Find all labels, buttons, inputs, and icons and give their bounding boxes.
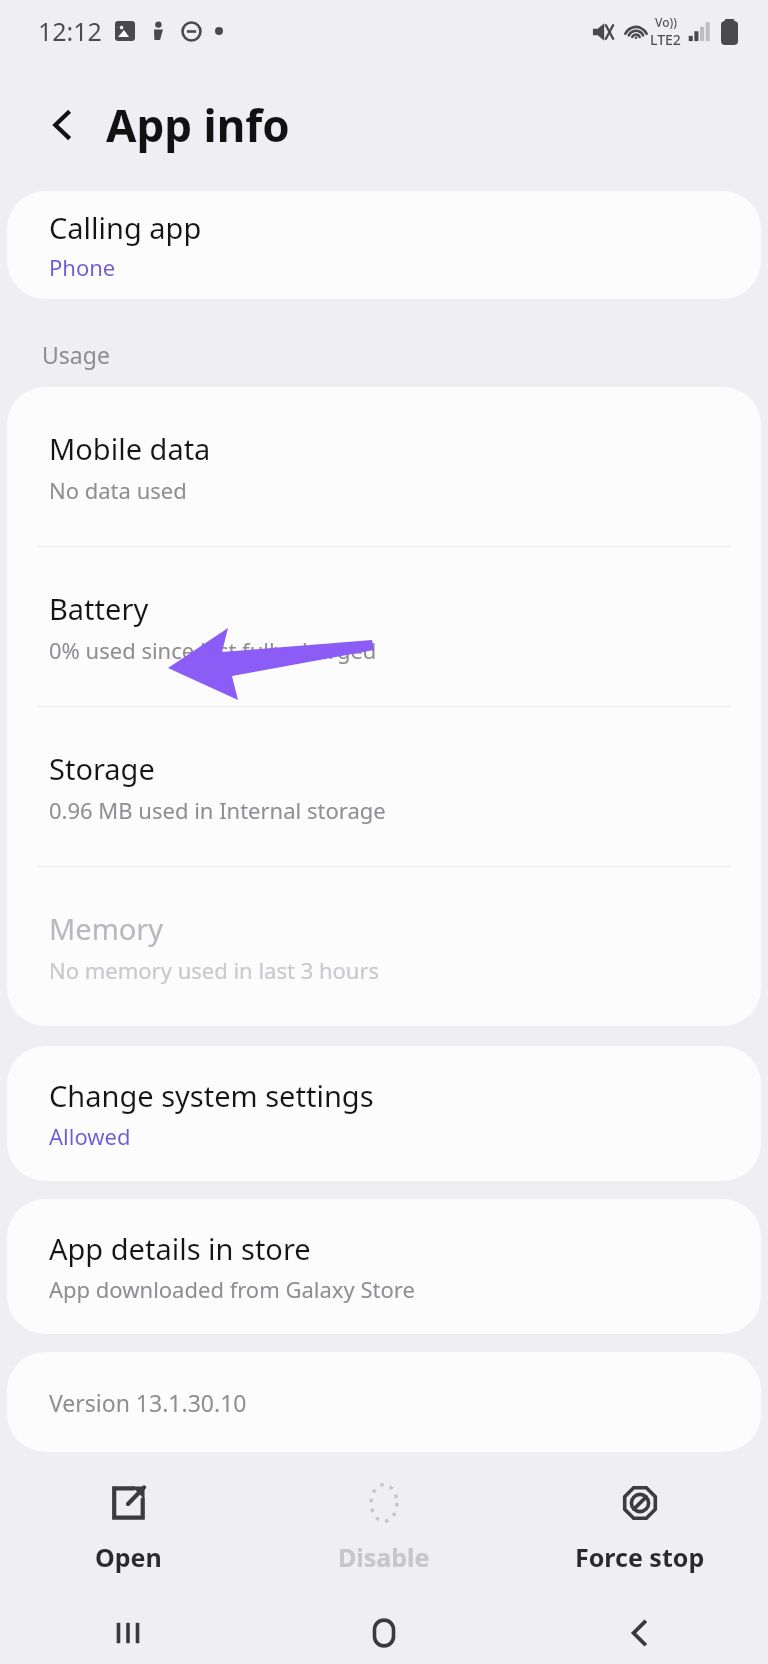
button[interactable]: Force stop xyxy=(512,1452,768,1602)
staticText: 0.96 MB used in Internal storage xyxy=(49,795,386,825)
staticText: 12:12 xyxy=(38,14,102,48)
staticText: Open xyxy=(95,1540,162,1574)
staticText: Storage xyxy=(49,749,155,788)
staticText: Force stop xyxy=(575,1540,705,1574)
button[interactable]: Back xyxy=(512,1602,768,1664)
staticText: No memory used in last 3 hours xyxy=(49,955,380,985)
staticText: Memory xyxy=(49,909,164,948)
staticText: App info xyxy=(106,95,290,155)
staticText: App downloaded from Galaxy Store xyxy=(49,1274,415,1304)
button[interactable]: Back xyxy=(36,98,90,152)
staticText: Vo)) xyxy=(655,14,677,30)
button[interactable]: App details in store xyxy=(7,1199,761,1334)
button[interactable]: Battery xyxy=(7,547,761,706)
button[interactable]: Recents xyxy=(0,1602,256,1664)
staticText: Battery xyxy=(49,589,149,628)
staticText: Change system settings xyxy=(49,1076,374,1115)
button[interactable]: Memory xyxy=(7,867,761,1026)
button[interactable]: Disable xyxy=(256,1452,512,1602)
staticText: App details in store xyxy=(49,1229,311,1268)
button[interactable]: Calling app xyxy=(7,191,761,299)
button[interactable]: Version 13.1.30.10 xyxy=(7,1352,761,1452)
staticText: Allowed xyxy=(49,1121,131,1151)
button[interactable]: Storage xyxy=(7,707,761,866)
button[interactable]: Home xyxy=(256,1602,512,1664)
staticText: Mobile data xyxy=(49,429,211,468)
staticText: Disable xyxy=(338,1540,430,1574)
staticText: Phone xyxy=(49,252,116,282)
button[interactable]: Mobile data xyxy=(7,387,761,546)
button[interactable]: Change system settings xyxy=(7,1046,761,1181)
staticText: No data used xyxy=(49,475,187,505)
button[interactable]: Open xyxy=(0,1452,256,1602)
staticText: LTE2 xyxy=(650,30,681,49)
staticText: Version 13.1.30.10 xyxy=(49,1387,247,1418)
staticText: Calling app xyxy=(49,208,202,247)
staticText: Usage xyxy=(42,339,110,370)
staticText: 0% used since last fully charged xyxy=(49,635,377,665)
